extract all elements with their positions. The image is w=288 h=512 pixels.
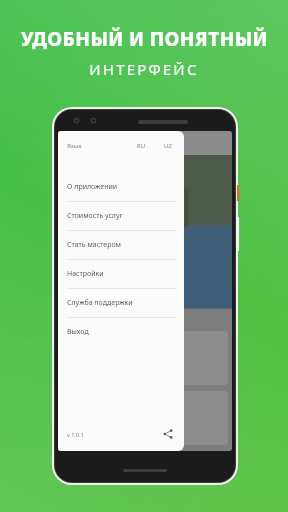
button[interactable]: RU [133,140,150,152]
staticText: О приложении [67,182,118,192]
staticText: Настройки [67,269,104,279]
button[interactable]: Настройки [58,260,184,288]
staticText: v 1.0.1 [67,431,84,438]
staticText: Служба поддержки [67,298,133,308]
button[interactable]: Стать мастером [58,231,184,259]
staticText: Язык [67,142,82,150]
staticText: Стоимость услуг [67,211,123,221]
button[interactable]: Стоимость услуг [58,202,184,230]
staticText: ИНТЕРФЕЙС [89,59,199,79]
button[interactable]: UZ [160,140,176,152]
staticText: Выход [67,327,89,337]
staticText: RU [137,142,146,150]
button[interactable] [62,331,228,385]
button[interactable]: Выход [58,318,184,346]
button[interactable] [62,391,228,445]
button[interactable]: О приложении [58,173,184,201]
button[interactable]: Служба поддержки [58,289,184,317]
staticText: UZ [164,142,172,150]
button[interactable]: Share [161,427,175,441]
staticText: УДОБНЫЙ И ПОНЯТНЫЙ [21,26,268,52]
staticText: Стать мастером [67,240,121,250]
